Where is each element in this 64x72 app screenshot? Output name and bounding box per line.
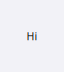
staticText: Hi bbox=[26, 29, 37, 43]
